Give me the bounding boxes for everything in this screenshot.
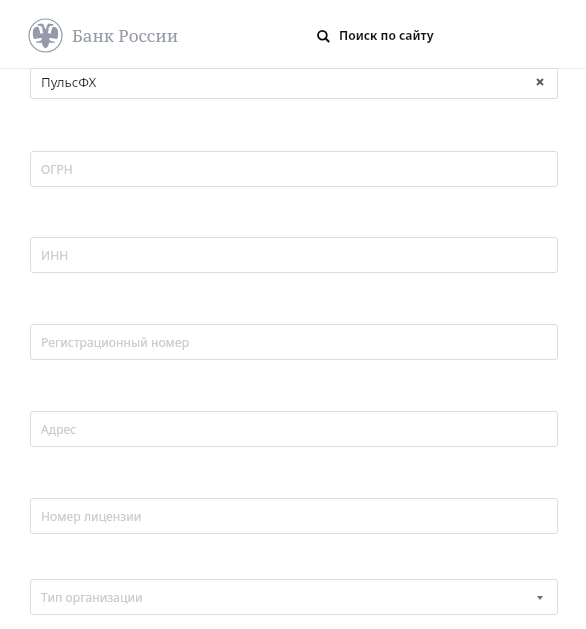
staticText: ПульсФХ — [41, 73, 97, 91]
button[interactable]: Адрес — [30, 411, 558, 447]
staticText: Банк России — [72, 24, 179, 47]
button[interactable]: Регистрационный номер — [30, 324, 558, 360]
button[interactable]: Открыть список — [537, 595, 543, 601]
staticText: Регистрационный номер — [41, 334, 190, 350]
button[interactable]: Тип организации — [30, 579, 558, 615]
staticText: Поиск по сайту — [339, 27, 434, 43]
button[interactable]: ОГРН — [30, 151, 558, 187]
other: Search — [316, 26, 334, 44]
button[interactable]: Search — [316, 26, 434, 44]
button[interactable]: ПульсФХ — [30, 68, 558, 99]
staticText: Номер лицензии — [41, 508, 142, 524]
button[interactable]: Очистить — [534, 76, 546, 88]
button[interactable]: Номер лицензии — [30, 498, 558, 534]
staticText: Тип организации — [41, 589, 143, 605]
staticText: ОГРН — [41, 161, 73, 177]
button[interactable]: Банк России — на главную — [28, 18, 179, 53]
staticText: Адрес — [41, 421, 77, 437]
staticText: ИНН — [41, 247, 69, 263]
button[interactable]: ИНН — [30, 237, 558, 273]
